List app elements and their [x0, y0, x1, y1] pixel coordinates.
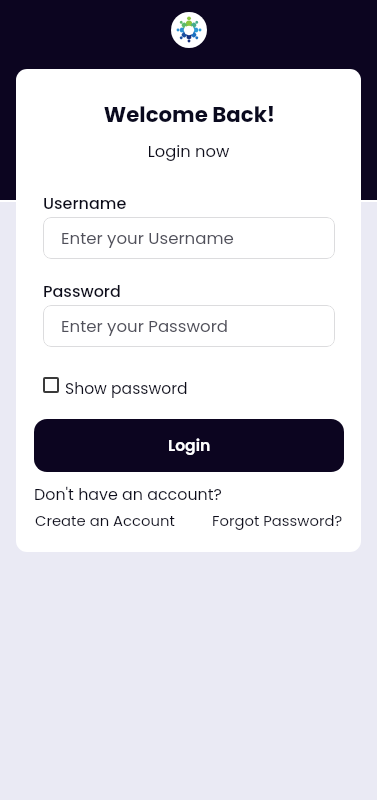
button[interactable]: Show password — [43, 374, 166, 395]
staticText: Enter your Username — [61, 227, 234, 250]
staticText: Enter your Password — [61, 315, 229, 338]
staticText: Show password — [65, 378, 188, 399]
button[interactable]: Login — [34, 419, 344, 472]
button[interactable]: Forgot Password? — [212, 510, 343, 531]
staticText: Username — [43, 192, 127, 214]
button[interactable]: Enter your Password — [43, 305, 335, 347]
staticText: Password — [43, 280, 121, 302]
staticText: Login now — [16, 140, 361, 163]
other: App logo — [171, 12, 207, 48]
staticText: Welcome Back! — [17, 100, 361, 130]
button[interactable]: Don't have an account? — [34, 483, 222, 505]
button[interactable]: Enter your Username — [43, 217, 335, 259]
staticText: Login — [168, 435, 211, 457]
button[interactable]: Create an Account — [35, 510, 175, 531]
